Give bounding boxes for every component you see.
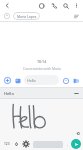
staticText: Hello <box>4 91 14 96</box>
button[interactable]: Emoji <box>61 76 70 85</box>
staticText: Hello <box>27 78 36 83</box>
button[interactable]: Call <box>49 1 58 10</box>
button[interactable]: Hello <box>24 75 59 85</box>
button[interactable]: Backspace <box>74 130 81 137</box>
button[interactable]: Send <box>71 139 81 149</box>
staticText: . <box>67 142 69 147</box>
button[interactable]: Send message <box>71 76 80 85</box>
button[interactable]: Keyboard settings <box>22 140 30 148</box>
button[interactable]: Conversation details <box>72 12 80 20</box>
staticText: Maria Lopez <box>17 14 37 19</box>
button[interactable]: Contact avatar <box>3 12 10 19</box>
button[interactable]: Search <box>61 1 70 10</box>
button[interactable]: Maria Lopez <box>13 12 40 20</box>
staticText: 123 <box>4 142 10 146</box>
button[interactable]: 123 <box>2 140 11 148</box>
button[interactable]: Video call <box>37 1 46 10</box>
button[interactable]: Back <box>3 1 11 9</box>
button[interactable]: Add attachment <box>3 76 12 85</box>
button[interactable]: Gallery <box>13 76 22 85</box>
button[interactable]: Stylus mode <box>12 140 20 148</box>
button[interactable]: Expand suggestions <box>73 90 80 97</box>
button[interactable]: More options <box>72 1 80 9</box>
staticText: Conversation with Maria <box>23 66 61 70</box>
button[interactable]: . <box>65 140 70 148</box>
staticText: 10:14 <box>37 59 47 64</box>
button[interactable]: Hello <box>3 90 15 97</box>
button[interactable]: Handwriting input area <box>0 99 83 138</box>
